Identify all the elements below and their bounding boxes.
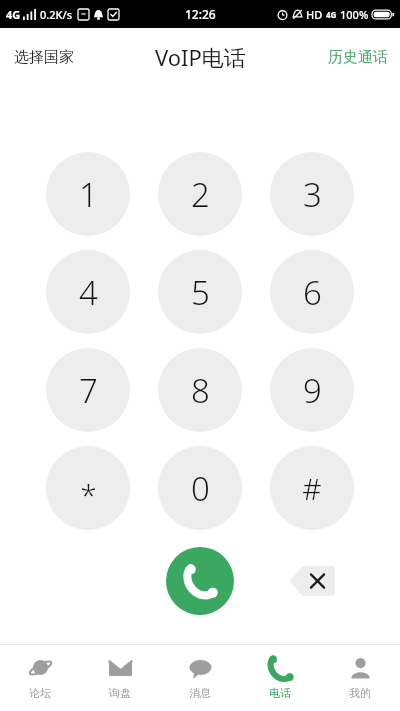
staticText: 电话: [269, 686, 291, 700]
button[interactable]: 0: [158, 446, 242, 530]
staticText: 2: [191, 172, 210, 217]
staticText: 6: [303, 270, 322, 315]
staticText: 3: [303, 172, 322, 217]
button[interactable]: 9: [270, 348, 354, 432]
button[interactable]: 7: [46, 348, 130, 432]
staticText: 消息: [189, 686, 211, 700]
staticText: 7: [79, 368, 98, 413]
staticText: 9: [303, 368, 322, 413]
staticText: *: [80, 474, 97, 515]
staticText: 4G: [326, 9, 337, 20]
staticText: 1: [79, 172, 98, 217]
button[interactable]: 3: [270, 152, 354, 236]
button[interactable]: 选择国家: [0, 40, 88, 75]
button[interactable]: 消息: [160, 645, 240, 711]
button[interactable]: Backspace: [289, 566, 335, 596]
staticText: 100%: [340, 7, 369, 22]
staticText: 0.2K/s: [40, 7, 73, 22]
button[interactable]: Call: [166, 547, 234, 615]
staticText: VoIP电话: [155, 42, 246, 72]
button[interactable]: 2: [158, 152, 242, 236]
staticText: 选择国家: [14, 48, 74, 67]
staticText: 12:26: [185, 6, 216, 22]
staticText: 我的: [349, 686, 371, 700]
staticText: 4G: [6, 7, 21, 22]
button[interactable]: 4: [46, 250, 130, 334]
button[interactable]: #: [270, 446, 354, 530]
button[interactable]: 论坛: [0, 645, 80, 711]
staticText: HD: [306, 7, 323, 22]
staticText: #: [302, 468, 322, 509]
button[interactable]: 我的: [320, 645, 400, 711]
button[interactable]: 询盘: [80, 645, 160, 711]
staticText: 询盘: [109, 686, 131, 700]
staticText: 论坛: [29, 686, 51, 700]
button[interactable]: 历史通话: [316, 40, 400, 75]
staticText: 0: [191, 466, 210, 511]
staticText: 8: [191, 368, 210, 413]
staticText: 4: [79, 270, 98, 315]
button[interactable]: 6: [270, 250, 354, 334]
button[interactable]: *: [46, 446, 130, 530]
button[interactable]: 5: [158, 250, 242, 334]
staticText: 5: [191, 270, 210, 315]
button[interactable]: 电话: [240, 645, 320, 711]
button[interactable]: 8: [158, 348, 242, 432]
staticText: 历史通话: [328, 48, 388, 67]
button[interactable]: 1: [46, 152, 130, 236]
